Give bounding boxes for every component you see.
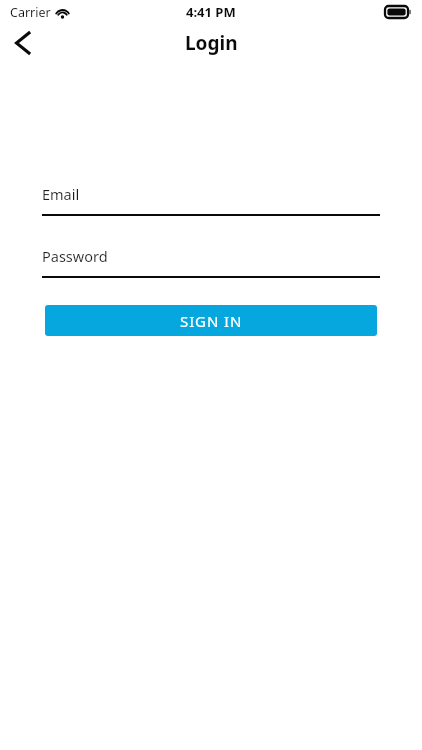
staticText: Carrier [10, 4, 51, 21]
staticText: Password [42, 246, 108, 266]
staticText: 4:41 PM [186, 3, 236, 21]
button[interactable]: Password [42, 243, 380, 278]
button[interactable]: SIGN IN [45, 305, 377, 336]
button[interactable]: Back [0, 24, 44, 62]
staticText: SIGN IN [180, 311, 243, 331]
staticText: Email [42, 184, 80, 204]
button[interactable]: Email [42, 181, 380, 216]
staticText: Login [185, 30, 238, 56]
